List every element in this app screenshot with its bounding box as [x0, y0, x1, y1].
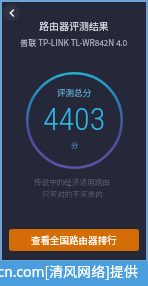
staticText: 只买对的不买贵的 [42, 188, 103, 199]
staticText: 普联 TP-LINK TL-WR842N 4.0 [20, 36, 128, 48]
staticText: 分 [71, 140, 78, 150]
button[interactable]: 查看全国路由器排行 [9, 229, 139, 251]
staticText: 查看全国路由器排行 [31, 233, 117, 247]
staticText: 评测总分 [57, 86, 92, 98]
staticText: 路由器评测结果 [39, 18, 109, 32]
staticText: 传说中的经济适用路由 [34, 176, 110, 187]
staticText: 4403 [43, 100, 106, 138]
staticText: cn.com[清风网络]提供 [0, 261, 139, 281]
button[interactable]: Back [3, 4, 20, 21]
